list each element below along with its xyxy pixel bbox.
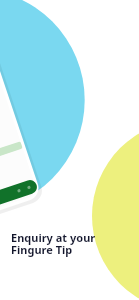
staticText: Enquiry at your Fingure Tip <box>11 230 96 257</box>
